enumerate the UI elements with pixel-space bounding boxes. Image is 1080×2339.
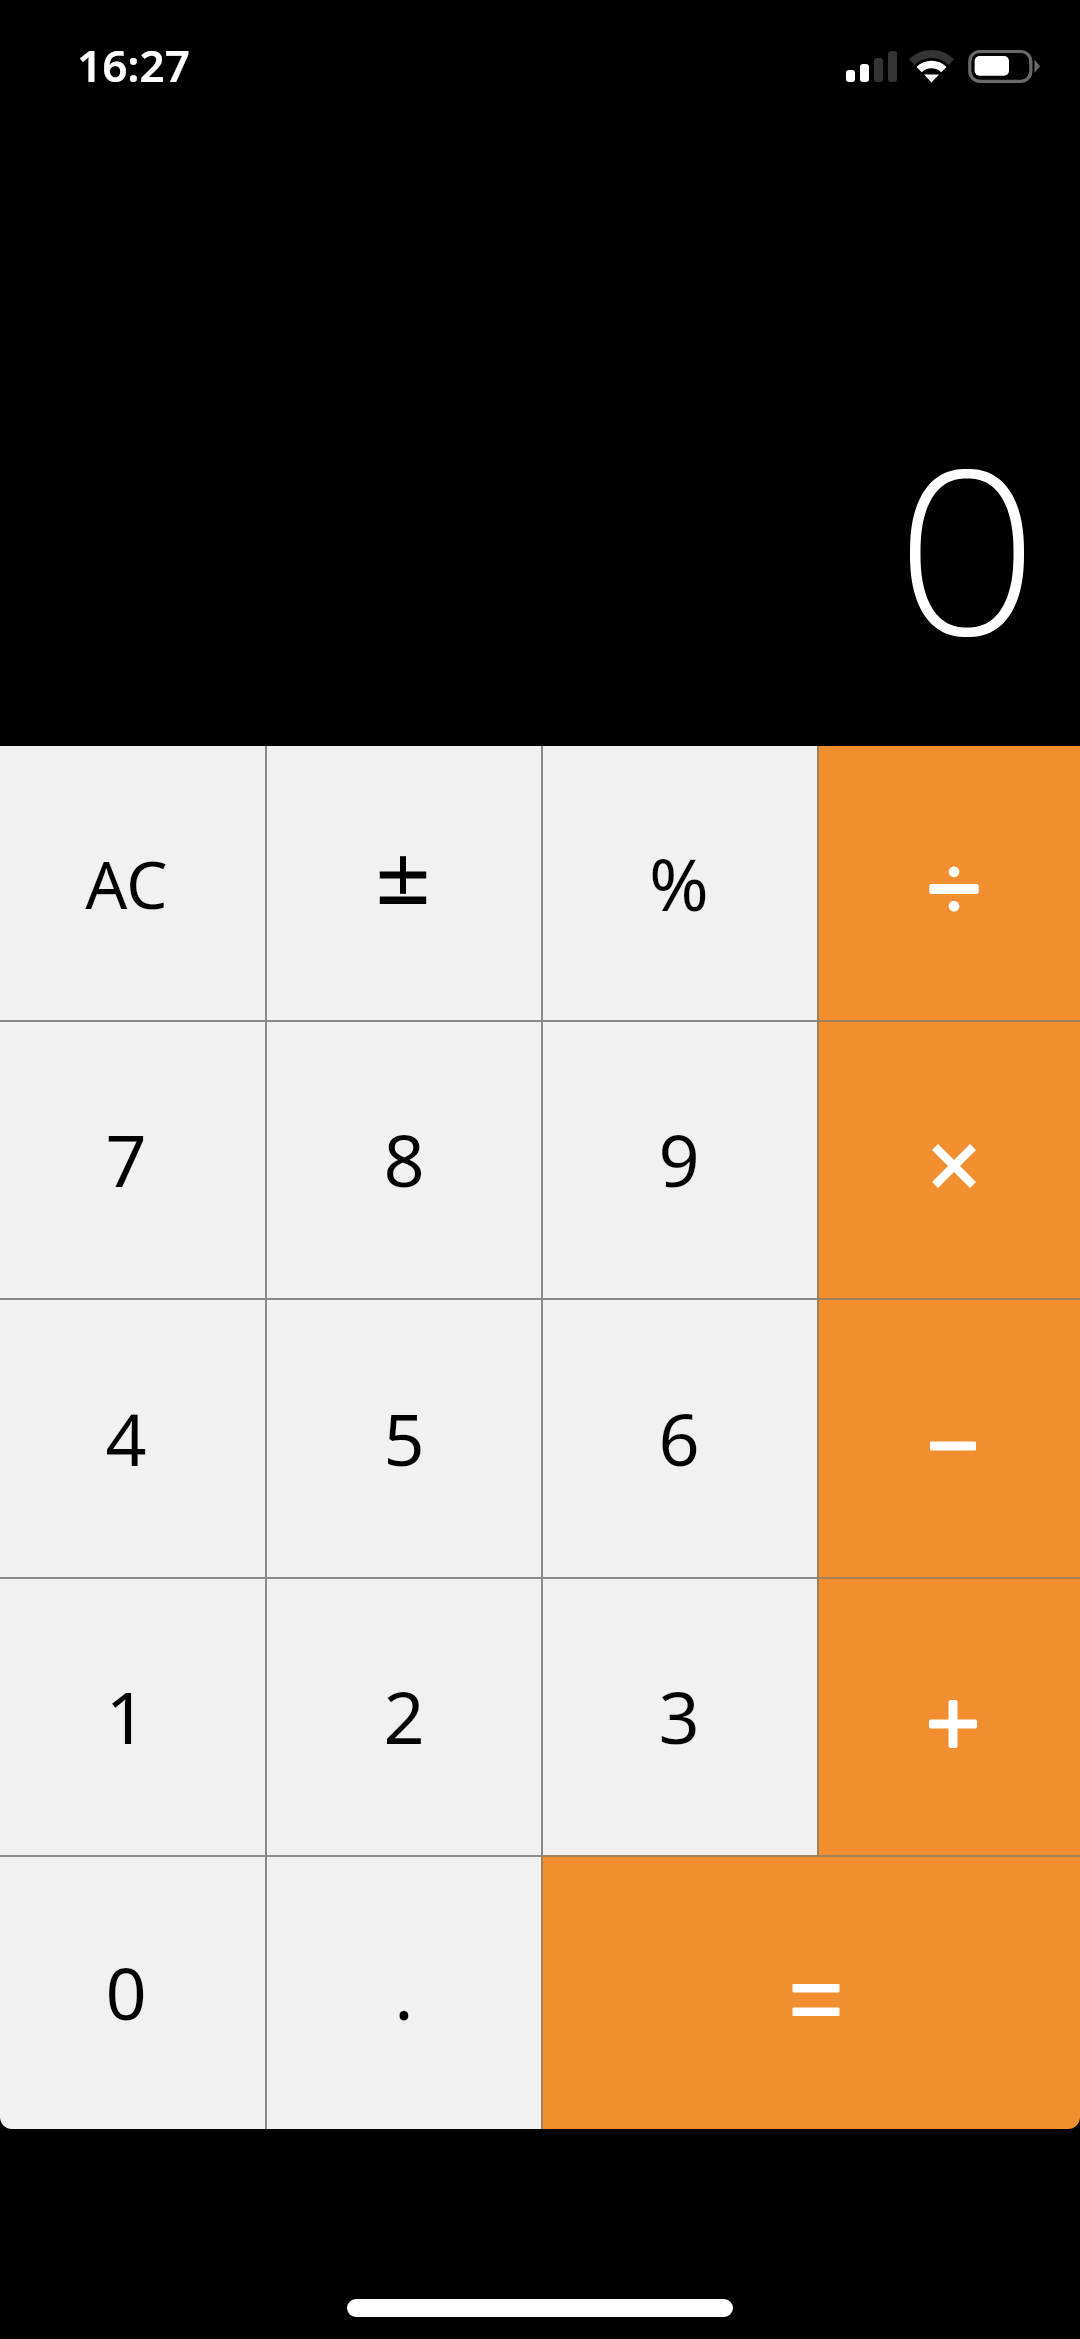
staticText: 2 (383, 1667, 425, 1765)
button[interactable]: Subtract (818, 1299, 1080, 1578)
staticText: 9 (658, 1110, 700, 1208)
button[interactable]: 2 (266, 1578, 542, 1856)
staticText: % (649, 834, 709, 932)
staticText: 0 (105, 1943, 147, 2041)
button[interactable]: 3 (542, 1578, 818, 1856)
staticText: 7 (105, 1110, 147, 1208)
button[interactable]: Equals (542, 1856, 1080, 2129)
button[interactable]: % (542, 746, 818, 1021)
staticText: 1 (105, 1667, 147, 1765)
button[interactable]: 4 (0, 1299, 266, 1578)
button[interactable]: 9 (542, 1021, 818, 1299)
button[interactable]: Multiply (818, 1021, 1080, 1299)
button[interactable]: 6 (542, 1299, 818, 1578)
staticText: 5 (383, 1389, 425, 1487)
button[interactable]: 0 (0, 1856, 266, 2129)
staticText: 4 (105, 1389, 147, 1487)
button[interactable]: Divide (818, 746, 1080, 1021)
button[interactable]: 7 (0, 1021, 266, 1299)
button[interactable]: 8 (266, 1021, 542, 1299)
button[interactable]: AC (0, 746, 266, 1021)
staticText: 16:27 (77, 35, 190, 95)
staticText: 8 (383, 1110, 425, 1208)
staticText: 3 (658, 1667, 700, 1765)
button[interactable]: . (266, 1856, 542, 2129)
button[interactable]: 1 (0, 1578, 266, 1856)
button[interactable]: Add (818, 1578, 1080, 1856)
staticText: . (394, 1943, 414, 2041)
staticText: 6 (658, 1389, 700, 1487)
staticText: AC (85, 838, 168, 928)
button[interactable]: 5 (266, 1299, 542, 1578)
button[interactable]: Toggle sign (266, 746, 542, 1021)
